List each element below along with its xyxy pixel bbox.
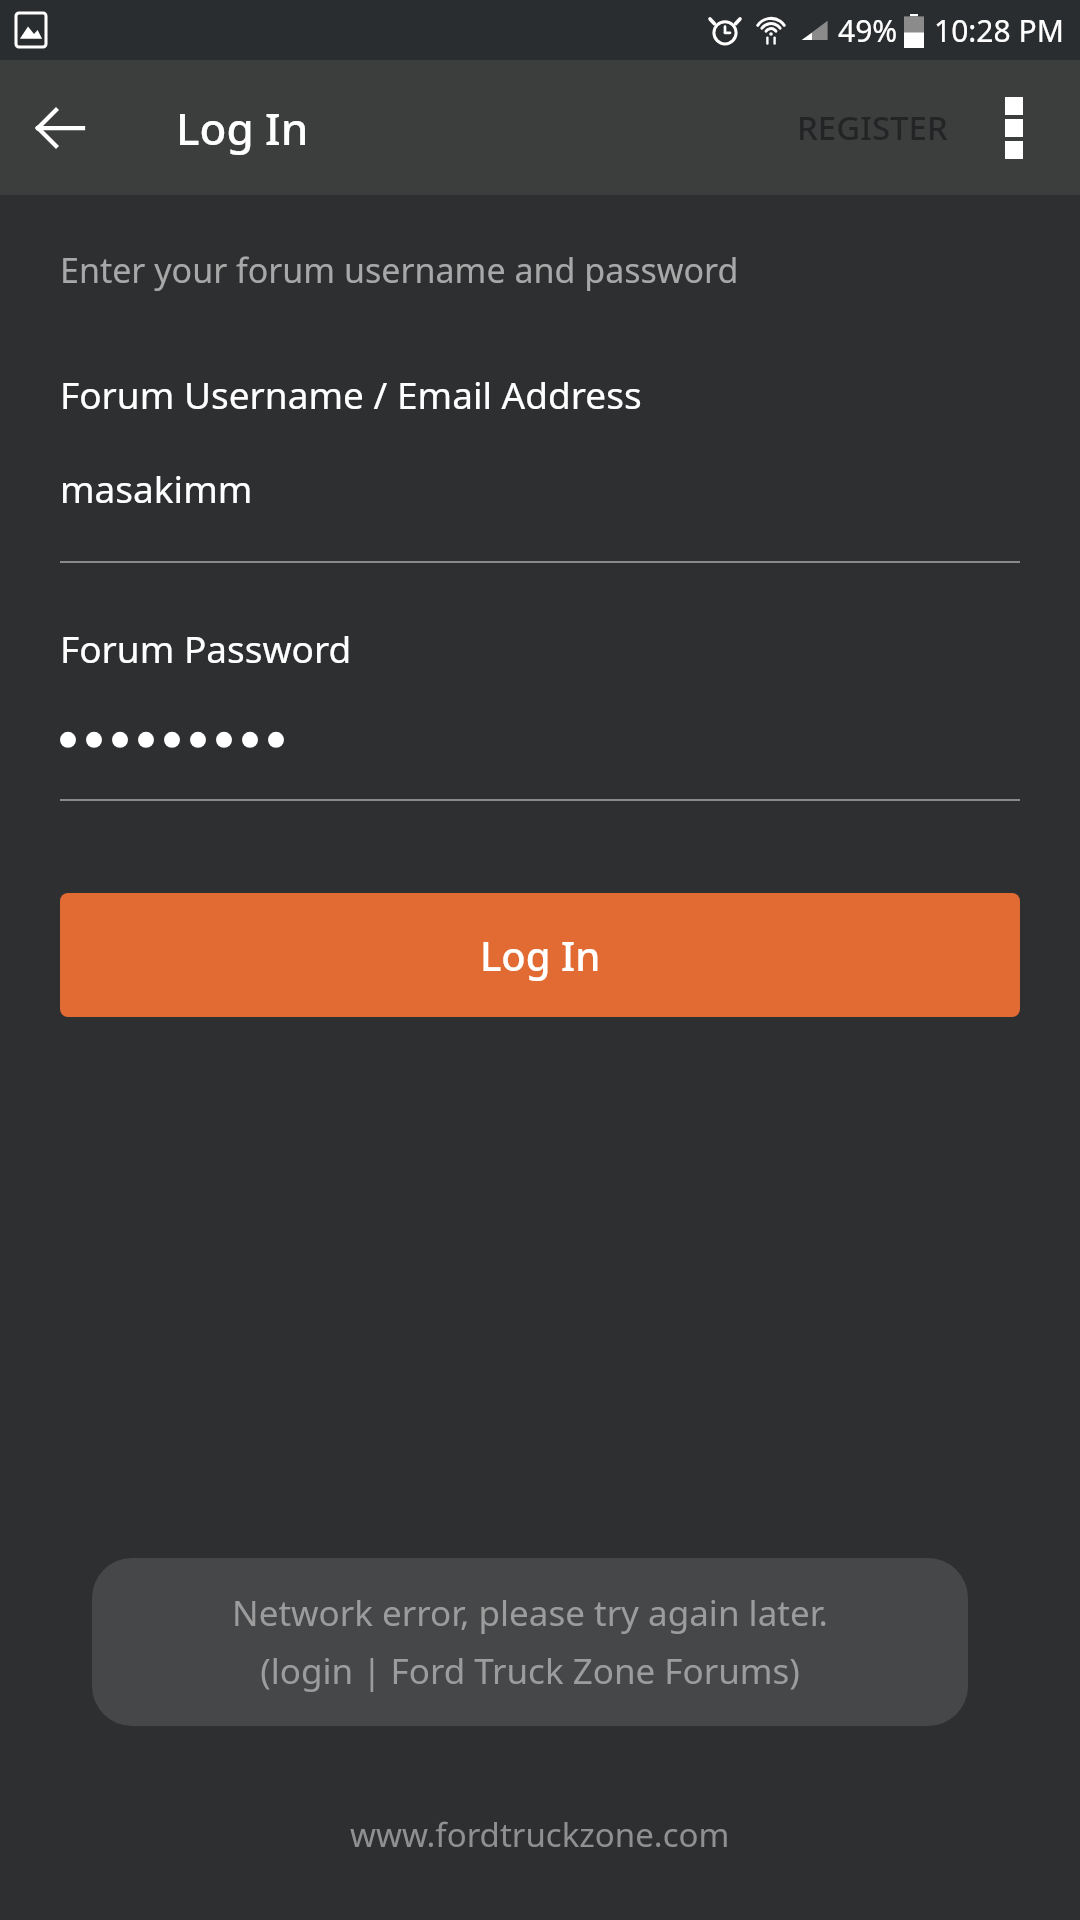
staticText: Network error, please try again later. — [232, 1589, 828, 1637]
button[interactable]: More options — [978, 92, 1050, 164]
staticText: 49% — [838, 10, 898, 51]
staticText: Forum Password — [60, 623, 352, 673]
button[interactable] — [60, 719, 1020, 759]
staticText: masakimm — [60, 463, 253, 513]
staticText: 10:28 PM — [934, 10, 1064, 51]
staticText: Forum Username / Email Address — [60, 369, 642, 419]
button[interactable]: Log In — [60, 893, 1020, 1017]
button[interactable]: Back — [24, 92, 96, 164]
button[interactable]: REGISTER — [785, 89, 960, 166]
staticText: REGISTER — [797, 105, 948, 150]
staticText: Log In — [176, 98, 309, 158]
staticText: Enter your forum username and password — [60, 247, 739, 293]
button[interactable]: masakimm — [60, 463, 1020, 513]
staticText: Log In — [480, 928, 601, 982]
staticText: www.fordtruckzone.com — [350, 1812, 730, 1857]
staticText: (login | Ford Truck Zone Forums) — [260, 1647, 800, 1695]
